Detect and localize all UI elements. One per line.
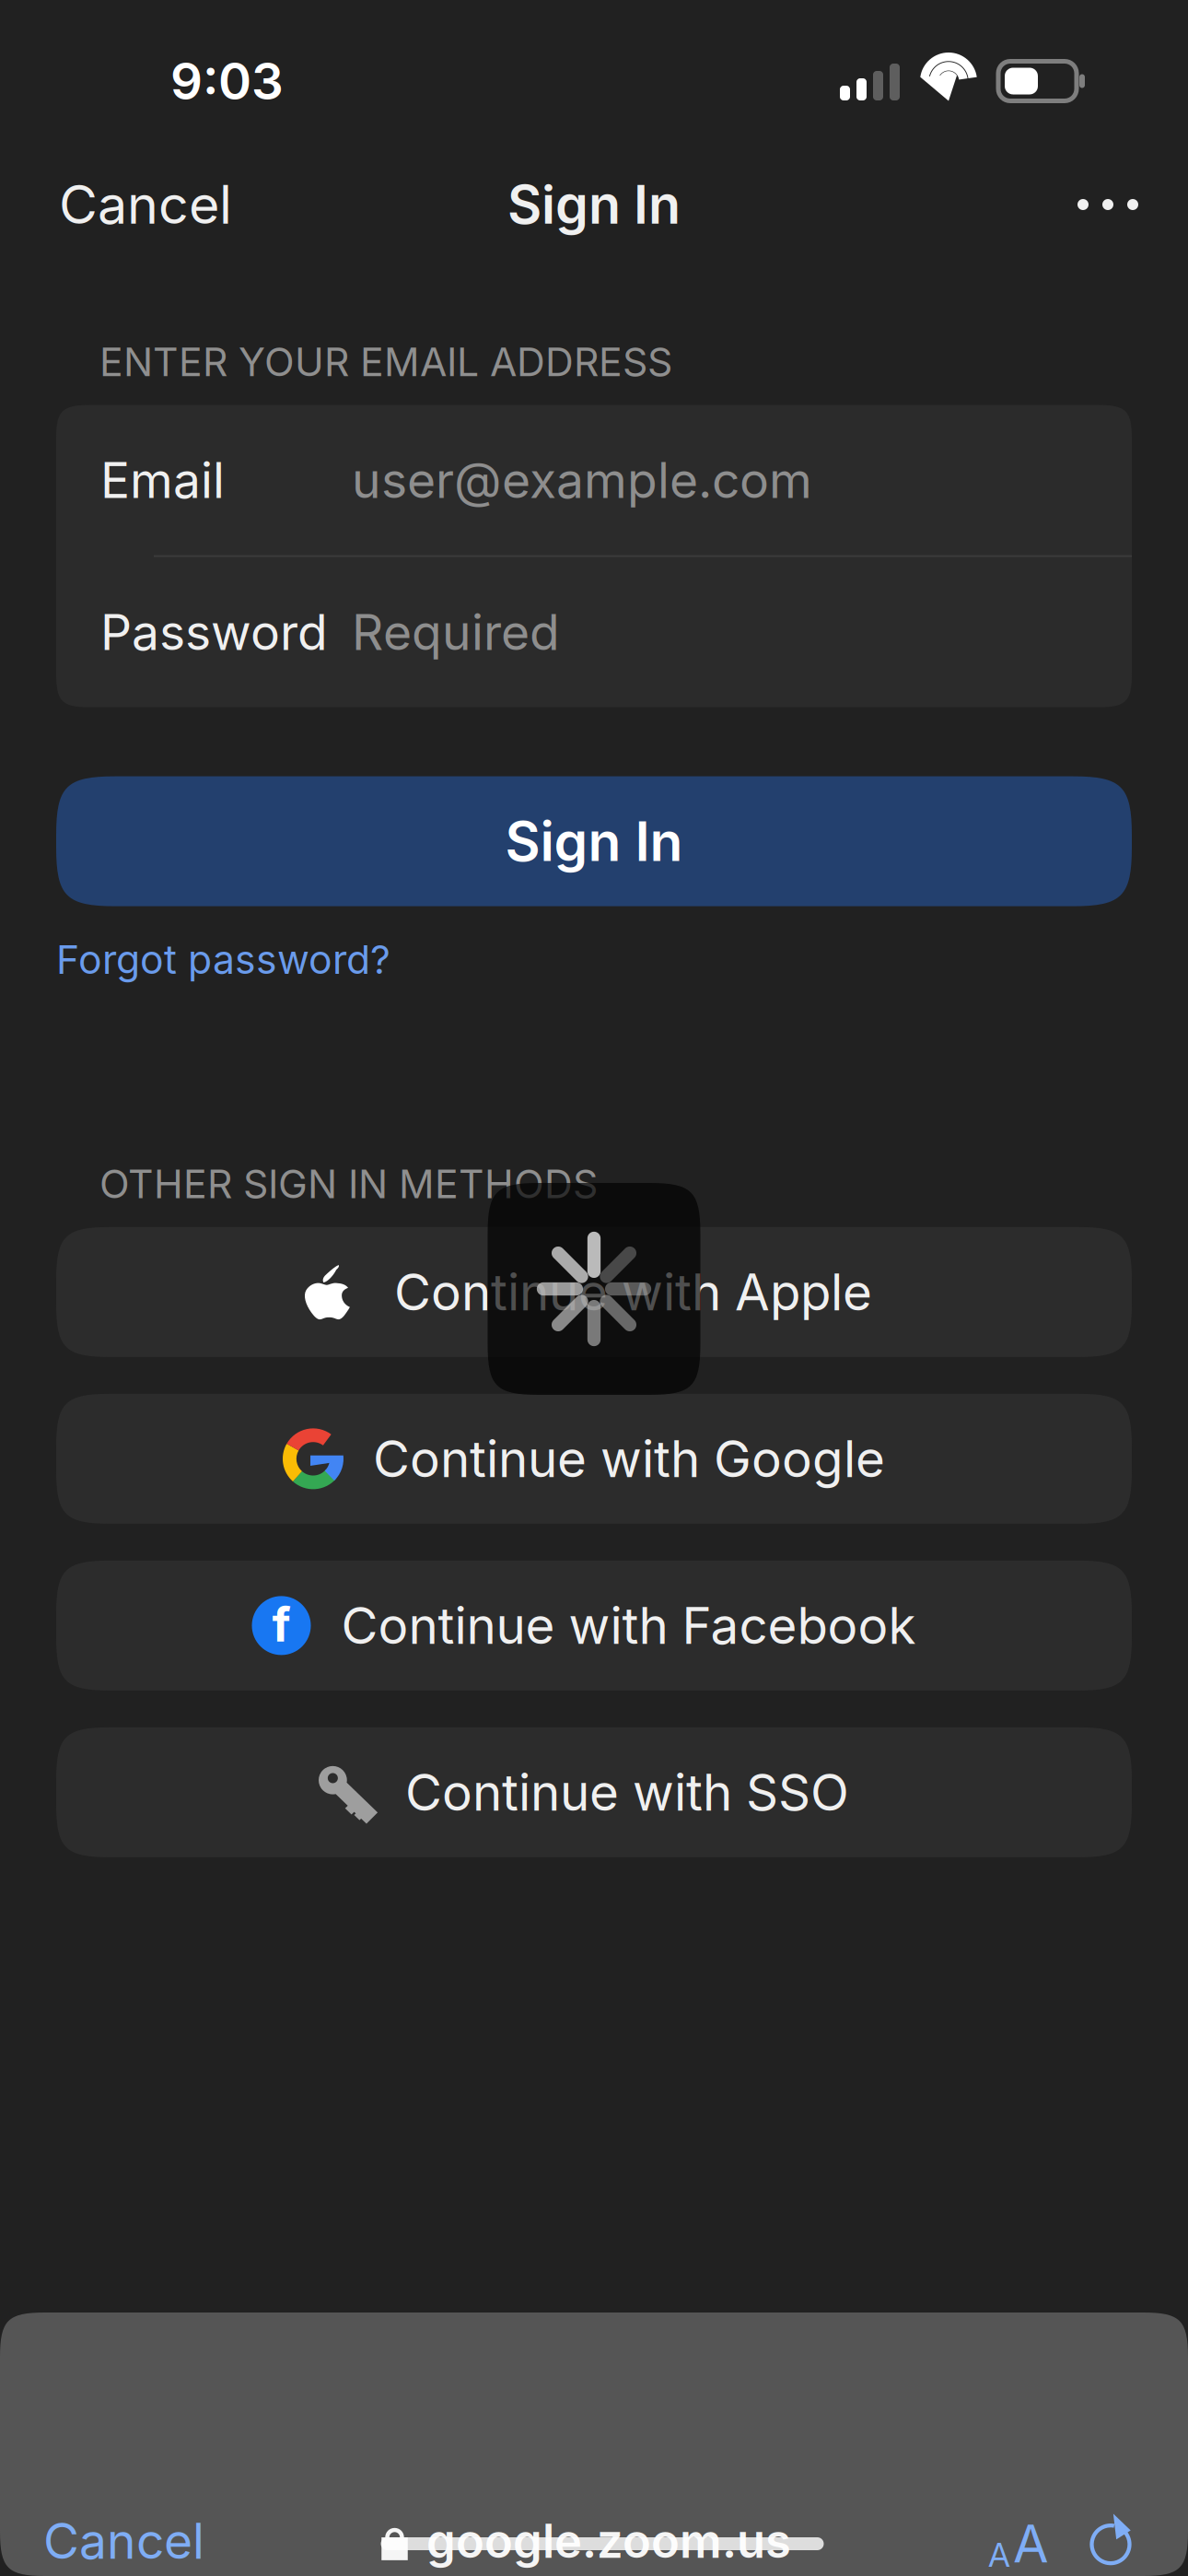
button[interactable]: Sign In <box>56 776 1132 906</box>
staticText: OTHER SIGN IN METHODS <box>99 1160 598 1208</box>
button[interactable]: Forgot password? <box>0 906 1188 996</box>
staticText: Email <box>100 450 225 510</box>
staticText: Continue with SSO <box>405 1762 849 1823</box>
staticText: google.zoom.us <box>426 2513 791 2569</box>
staticText: user@example.com <box>352 450 812 510</box>
staticText: Continue with Google <box>373 1428 885 1489</box>
staticText: ENTER YOUR EMAIL ADDRESS <box>99 338 672 386</box>
staticText: A <box>988 2535 1010 2575</box>
staticText: Sign In <box>505 809 683 874</box>
staticText: 9:03 <box>170 51 284 111</box>
staticText: A <box>1013 2512 1049 2575</box>
staticText: Forgot password? <box>56 936 390 983</box>
button[interactable]: Cancel <box>27 2496 221 2576</box>
button[interactable]: More options <box>1062 168 1154 241</box>
staticText: Sign In <box>507 173 681 237</box>
button[interactable]: Continue with SSO <box>56 1727 1132 1857</box>
button[interactable]: f <box>56 1561 1132 1691</box>
staticText: Cancel <box>43 2511 204 2570</box>
button[interactable]: Text size <box>973 2507 1065 2575</box>
button[interactable]: Reload page <box>1065 2507 1157 2575</box>
staticText: Password <box>100 602 328 662</box>
button[interactable]: Continue with Apple <box>56 1227 1132 1357</box>
staticText: Continue with Facebook <box>341 1595 916 1656</box>
staticText: Required <box>352 602 560 662</box>
staticText: f <box>272 1596 291 1653</box>
staticText: Cancel <box>59 173 232 237</box>
staticText: Continue with Apple <box>394 1262 872 1322</box>
button[interactable]: Continue with Google <box>56 1394 1132 1524</box>
button[interactable]: Cancel <box>44 154 247 255</box>
